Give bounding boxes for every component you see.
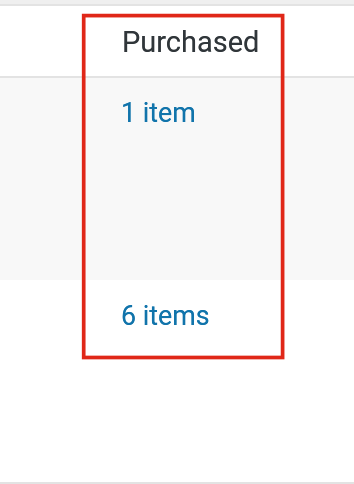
staticText: 6 items bbox=[121, 300, 210, 331]
staticText: 1 item bbox=[121, 97, 196, 128]
button[interactable]: Purchased bbox=[0, 12, 354, 72]
staticText: Purchased bbox=[122, 25, 260, 59]
button[interactable]: 1 item bbox=[0, 72, 354, 275]
staticText: Purchased bbox=[122, 25, 260, 59]
staticText: 1 item bbox=[121, 97, 196, 128]
button[interactable]: 6 items bbox=[0, 275, 354, 355]
staticText: 6 items bbox=[121, 300, 210, 331]
